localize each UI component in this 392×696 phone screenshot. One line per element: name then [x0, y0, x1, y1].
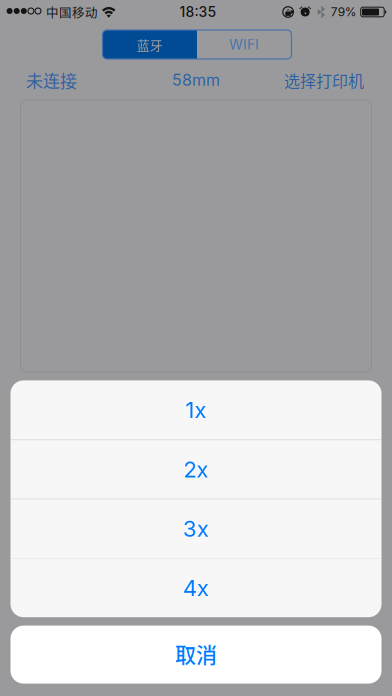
- staticText: 蓝牙: [137, 35, 163, 54]
- button[interactable]: 3x: [10, 499, 381, 558]
- staticText: 4x: [183, 575, 209, 601]
- staticText: 未连接: [26, 68, 77, 92]
- staticText: 2x: [183, 456, 208, 483]
- staticText: 中国移动: [46, 3, 98, 21]
- button[interactable]: 选择打印机: [284, 68, 364, 92]
- button[interactable]: WIFI: [197, 30, 291, 59]
- staticText: WIFI: [229, 36, 259, 53]
- staticText: 取消: [175, 638, 217, 668]
- staticText: 1x: [185, 397, 206, 423]
- button[interactable]: 未连接: [26, 68, 77, 92]
- staticText: 3x: [183, 515, 209, 542]
- button[interactable]: 4x: [10, 558, 381, 617]
- staticText: 18:35: [179, 3, 216, 20]
- button[interactable]: 58mm: [172, 70, 220, 90]
- staticText: 选择打印机: [284, 68, 364, 92]
- button[interactable]: 1x: [10, 380, 381, 440]
- button[interactable]: 蓝牙: [102, 30, 197, 59]
- staticText: 79%: [331, 5, 357, 19]
- staticText: 58mm: [172, 70, 220, 90]
- button[interactable]: 2x: [10, 440, 381, 499]
- button[interactable]: 取消: [10, 626, 381, 684]
